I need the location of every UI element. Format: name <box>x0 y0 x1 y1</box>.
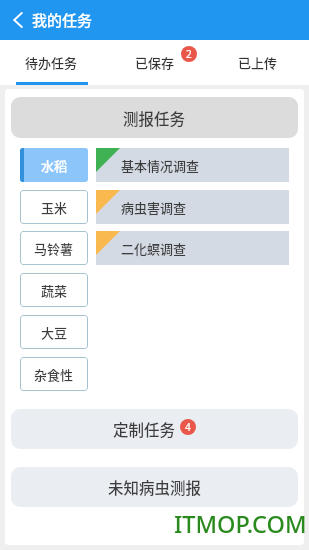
button[interactable]: 马铃薯 <box>20 231 88 265</box>
button[interactable]: 病虫害调查 <box>96 190 289 224</box>
staticText: 蔬菜 <box>41 281 68 300</box>
button[interactable]: 水稻 <box>20 148 88 182</box>
button[interactable]: 二化螟调查 <box>96 231 289 265</box>
staticText: 杂食性 <box>34 365 74 384</box>
button[interactable]: 已上传 <box>206 40 309 85</box>
button[interactable]: 已保存 <box>103 40 206 85</box>
staticText: 马铃薯 <box>34 239 74 258</box>
button[interactable]: 基本情况调查 <box>96 148 289 182</box>
staticText: 病虫害调查 <box>121 198 187 217</box>
button[interactable]: 定制任务 <box>11 409 298 449</box>
staticText: 待办任务 <box>25 53 78 72</box>
staticText: 测报任务 <box>123 107 186 129</box>
button[interactable]: 蔬菜 <box>20 273 88 307</box>
staticText: 大豆 <box>41 323 68 342</box>
staticText: 二化螟调查 <box>121 239 187 258</box>
staticText: 2 <box>186 47 192 61</box>
staticText: 定制任务 <box>113 418 176 440</box>
staticText: 已保存 <box>135 53 175 72</box>
staticText: 已上传 <box>238 53 278 72</box>
button[interactable]: 玉米 <box>20 190 88 224</box>
staticText: 水稻 <box>41 156 68 175</box>
staticText: 玉米 <box>41 198 68 217</box>
button[interactable]: 杂食性 <box>20 357 88 391</box>
button[interactable]: 未知病虫测报 <box>11 467 298 507</box>
button[interactable]: 待办任务 <box>0 40 103 85</box>
staticText: 我的任务 <box>32 9 93 31</box>
button[interactable]: 大豆 <box>20 315 88 349</box>
button[interactable]: Back <box>4 6 32 34</box>
staticText: ITMOP.COM <box>174 508 307 540</box>
button[interactable]: 测报任务 <box>11 97 298 138</box>
staticText: 4 <box>185 420 191 434</box>
staticText: 未知病虫测报 <box>108 476 202 498</box>
staticText: 基本情况调查 <box>121 156 200 175</box>
